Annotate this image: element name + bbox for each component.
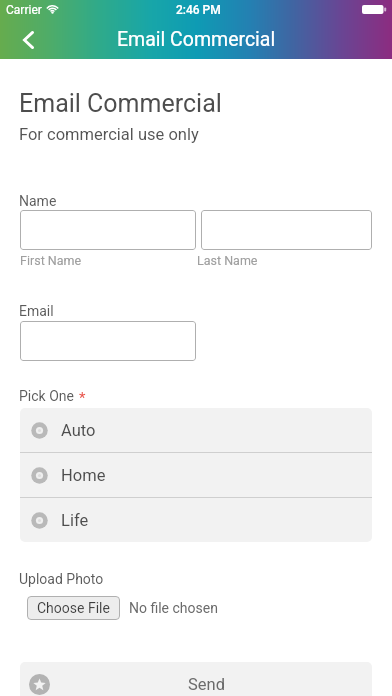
staticText: * bbox=[79, 389, 86, 407]
button[interactable]: Life bbox=[20, 498, 372, 542]
staticText: Pick One bbox=[19, 388, 74, 404]
button[interactable]: Choose File bbox=[27, 596, 120, 620]
staticText: Choose File bbox=[37, 600, 110, 616]
staticText: Send bbox=[188, 675, 225, 694]
button[interactable] bbox=[20, 210, 196, 250]
button[interactable]: Send bbox=[20, 662, 372, 696]
staticText: Carrier bbox=[6, 3, 42, 17]
button[interactable]: Home bbox=[20, 453, 372, 497]
button[interactable]: Back bbox=[8, 20, 48, 59]
staticText: Life bbox=[61, 511, 89, 530]
staticText: Email bbox=[19, 303, 54, 319]
staticText: For commercial use only bbox=[19, 125, 199, 144]
staticText: Upload Photo bbox=[19, 571, 104, 587]
staticText: First Name bbox=[20, 253, 82, 268]
staticText: 2:46 PM bbox=[176, 3, 221, 17]
staticText: Email Commercial bbox=[117, 28, 276, 51]
staticText: Name bbox=[19, 193, 57, 209]
staticText: No file chosen bbox=[129, 600, 218, 616]
staticText: Last Name bbox=[197, 253, 258, 268]
staticText: Email Commercial bbox=[19, 89, 222, 118]
button[interactable]: Auto bbox=[20, 408, 372, 452]
staticText: Auto bbox=[61, 421, 96, 440]
staticText: Home bbox=[61, 466, 106, 485]
button[interactable] bbox=[20, 321, 196, 361]
button[interactable] bbox=[201, 210, 372, 250]
